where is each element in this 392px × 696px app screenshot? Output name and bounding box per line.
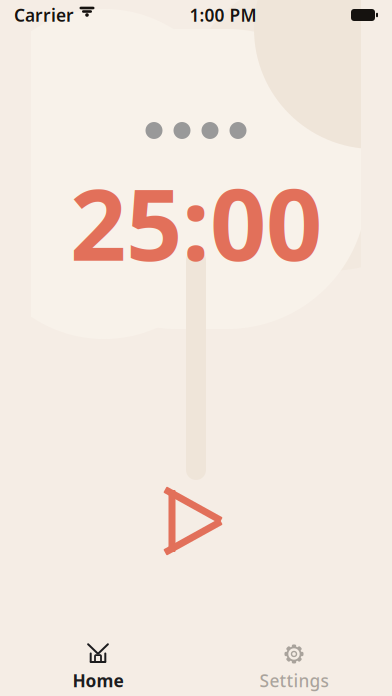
staticText: 1:00 PM [189,3,256,26]
button[interactable]: Home [0,636,196,696]
staticText: 25:00 [70,157,322,288]
staticText: Home [72,669,123,692]
staticText: Carrier [14,3,74,26]
button[interactable]: Start timer [141,466,251,576]
staticText: Settings [259,669,328,692]
button[interactable]: Settings [196,636,392,696]
